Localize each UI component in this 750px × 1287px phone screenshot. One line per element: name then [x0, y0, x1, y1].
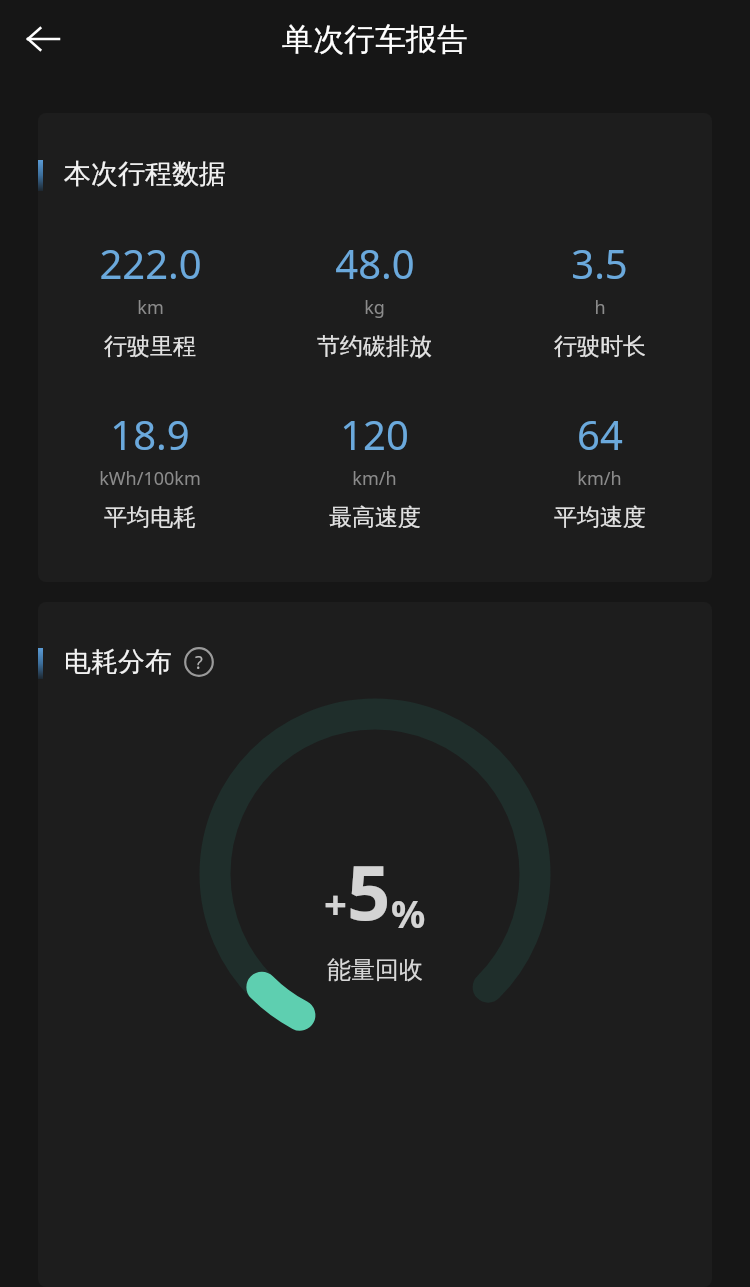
- staticText: 3.5: [571, 236, 628, 290]
- button[interactable]: 222.0: [38, 236, 262, 361]
- staticText: 48.0: [335, 236, 415, 290]
- staticText: 行驶时长: [554, 332, 646, 361]
- staticText: 64: [577, 407, 623, 461]
- staticText: ?: [195, 650, 203, 675]
- staticText: 222.0: [99, 236, 202, 290]
- button[interactable]: 3.5: [487, 236, 712, 361]
- staticText: 行驶里程: [104, 332, 196, 361]
- staticText: 本次行程数据: [64, 157, 226, 191]
- staticText: +: [324, 876, 347, 930]
- staticText: 120: [340, 407, 409, 461]
- staticText: 单次行车报告: [282, 20, 468, 59]
- button[interactable]: 18.9: [38, 407, 262, 532]
- button[interactable]: 64: [487, 407, 712, 532]
- staticText: %: [391, 887, 426, 939]
- button[interactable]: Help about power consumption distributio…: [184, 647, 214, 677]
- staticText: 5: [347, 839, 391, 943]
- button[interactable]: Back: [10, 6, 76, 72]
- staticText: 平均速度: [554, 503, 646, 532]
- button[interactable]: 120: [262, 407, 487, 532]
- staticText: 电耗分布: [64, 645, 172, 679]
- staticText: h: [594, 295, 606, 320]
- staticText: kWh/100km: [99, 466, 201, 491]
- staticText: 能量回收: [327, 955, 423, 985]
- staticText: kg: [364, 295, 385, 320]
- staticText: 平均电耗: [104, 503, 196, 532]
- staticText: km/h: [577, 466, 622, 491]
- staticText: 最高速度: [329, 503, 421, 532]
- button[interactable]: 48.0: [262, 236, 487, 361]
- staticText: 节约碳排放: [317, 332, 432, 361]
- staticText: km: [137, 295, 164, 320]
- staticText: km/h: [352, 466, 397, 491]
- staticText: 18.9: [110, 407, 190, 461]
